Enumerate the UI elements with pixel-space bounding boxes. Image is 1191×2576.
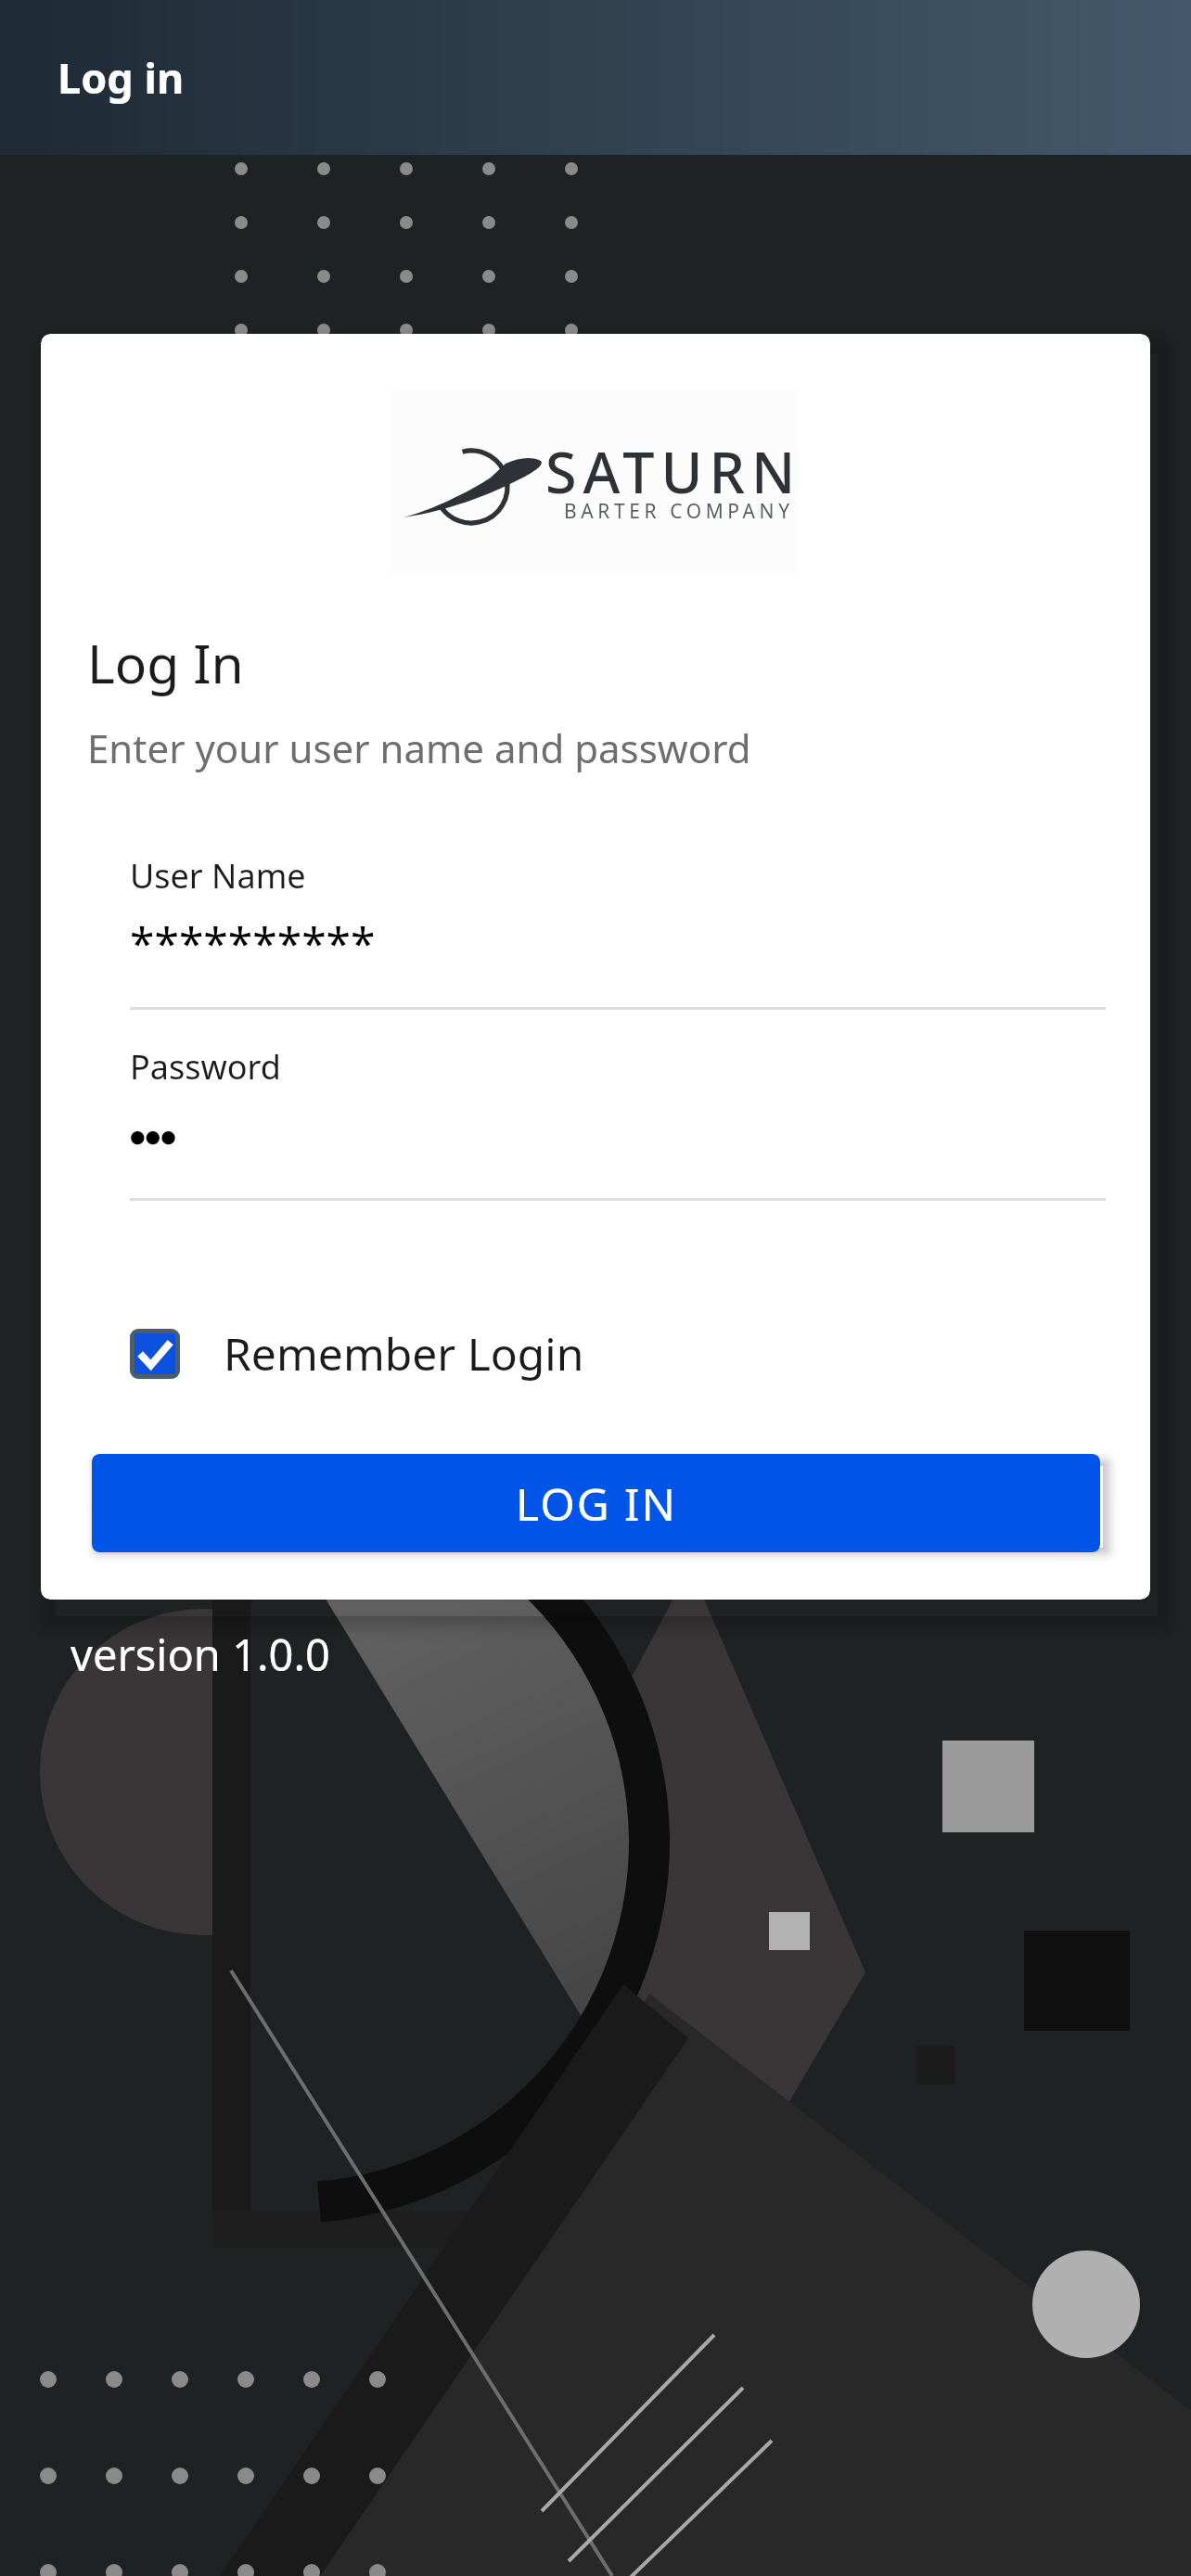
- staticText: Remember Login: [224, 1323, 584, 1384]
- staticText: ●●●: [130, 1126, 176, 1146]
- staticText: Log in: [58, 49, 185, 106]
- staticText: User Name: [130, 853, 306, 899]
- staticText: Password: [130, 1044, 281, 1090]
- button[interactable]: LOG IN: [92, 1454, 1100, 1552]
- staticText: BARTER COMPANY: [564, 498, 794, 525]
- staticText: Enter your user name and password: [87, 721, 751, 774]
- button[interactable]: Remember Login: [130, 1323, 584, 1384]
- staticText: version 1.0.0: [70, 1625, 330, 1684]
- staticText: LOG IN: [516, 1473, 677, 1534]
- staticText: Log In: [87, 627, 244, 699]
- staticText: SATURN: [545, 433, 802, 510]
- staticText: **********: [130, 912, 376, 973]
